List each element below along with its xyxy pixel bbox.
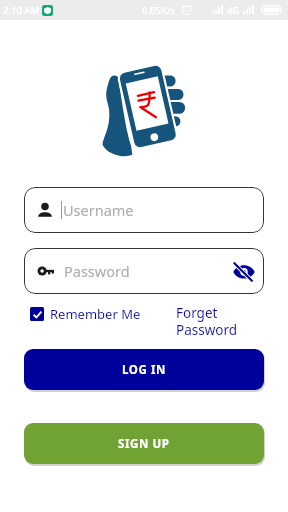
staticText: Remember Me: [50, 305, 141, 323]
button[interactable]: Show password: [232, 259, 256, 283]
button[interactable]: LOG IN: [24, 349, 264, 390]
staticText: 2:10 AM: [3, 4, 40, 17]
button[interactable]: Username: [24, 187, 264, 233]
staticText: Password: [64, 261, 130, 281]
button[interactable]: Forget Password: [176, 304, 238, 339]
button[interactable]: SIGN UP: [24, 423, 264, 464]
staticText: LOG IN: [122, 362, 167, 378]
staticText: Username: [63, 200, 134, 220]
staticText: SIGN UP: [118, 436, 170, 452]
staticText: 0.05K/s: [142, 4, 176, 17]
staticText: 4G: [227, 4, 240, 17]
staticText: Forget Password: [176, 304, 238, 339]
button[interactable]: Remember Me: [30, 305, 141, 323]
button[interactable]: Password: [24, 248, 264, 294]
